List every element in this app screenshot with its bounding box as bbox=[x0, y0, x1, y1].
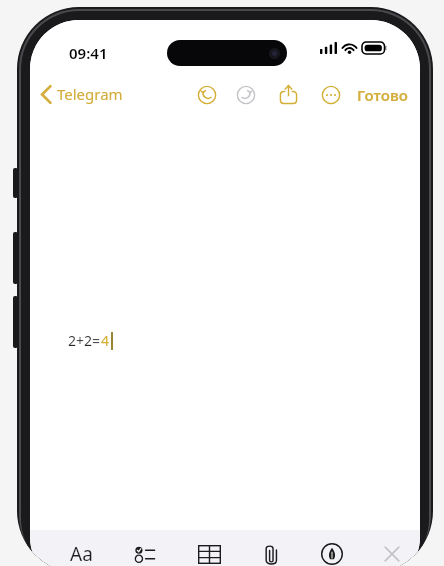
button[interactable]: Telegram bbox=[35, 80, 129, 108]
button[interactable]: Готово bbox=[353, 81, 412, 109]
button[interactable]: Undo bbox=[193, 81, 221, 109]
staticText: Telegram bbox=[57, 84, 123, 104]
button[interactable]: Close bbox=[373, 535, 411, 566]
button[interactable]: Markup bbox=[313, 535, 351, 566]
button[interactable]: Text format bbox=[62, 535, 100, 566]
staticText: Aa bbox=[70, 541, 93, 566]
staticText: 2+2= bbox=[68, 331, 101, 350]
button[interactable]: Attach file bbox=[252, 535, 290, 566]
staticText: Готово bbox=[357, 85, 408, 105]
staticText: 4 bbox=[101, 331, 110, 350]
button[interactable]: Share bbox=[275, 80, 302, 109]
button[interactable]: Checklist bbox=[126, 535, 164, 566]
button[interactable]: Redo bbox=[232, 81, 260, 109]
button[interactable]: Insert table bbox=[190, 535, 228, 566]
button[interactable]: More options bbox=[317, 81, 345, 109]
staticText: 09:41 bbox=[69, 43, 108, 63]
